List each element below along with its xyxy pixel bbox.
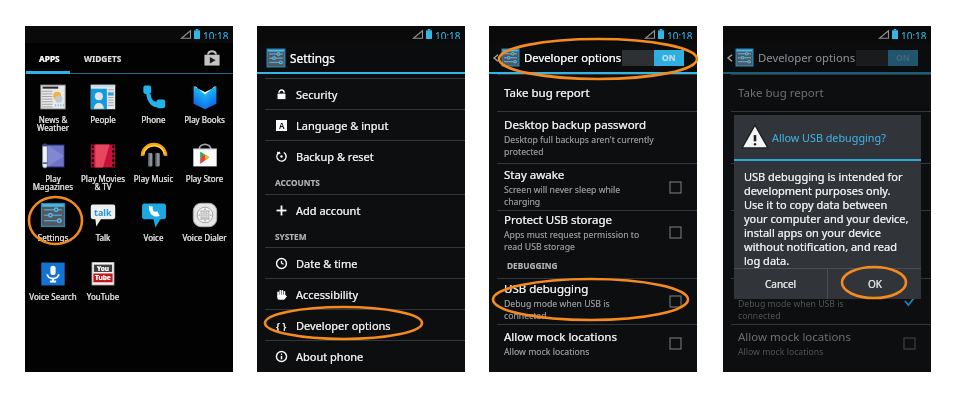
button[interactable]: People: [78, 78, 128, 137]
button[interactable]: Developer options toggle: [856, 50, 918, 66]
button[interactable]: Play Movies & TV: [78, 137, 128, 196]
staticText: OK: [868, 277, 882, 291]
staticText: Take bug report: [504, 85, 590, 101]
button[interactable]: Stay awake: [489, 164, 697, 210]
button[interactable]: Play Music: [128, 137, 179, 196]
button[interactable]: Cancel: [734, 269, 827, 299]
button[interactable]: Desktop backup password: [489, 112, 697, 163]
staticText: Desktop full backups aren't currently pr…: [504, 134, 654, 158]
staticText: Security: [296, 87, 338, 102]
button[interactable]: A: [257, 110, 465, 140]
staticText: Desktop backup password: [738, 117, 881, 133]
staticText: 10:18: [901, 29, 927, 39]
button[interactable]: Allow mock locations: [723, 325, 931, 361]
button[interactable]: Protect USB storage: [723, 211, 931, 253]
staticText: Protect USB storage: [504, 212, 613, 228]
button[interactable]: Desktop backup password: [723, 112, 931, 163]
button[interactable]: Developer options toggle: [622, 50, 684, 66]
staticText: Allow mock locations: [738, 346, 824, 358]
button[interactable]: Settings: [257, 43, 465, 72]
other: Back: [725, 53, 734, 62]
staticText: Settings: [290, 50, 335, 66]
staticText: SYSTEM: [275, 231, 307, 242]
button[interactable]: USB debugging checkbox: [904, 296, 915, 307]
staticText: Cancel: [765, 277, 797, 291]
button[interactable]: USB debugging: [723, 279, 931, 324]
button[interactable]: Protect USB storage: [489, 211, 697, 253]
button[interactable]: Accessibility: [257, 279, 465, 309]
staticText: Desktop backup password: [504, 117, 647, 133]
staticText: ON: [662, 52, 676, 64]
button[interactable]: News & Weather: [28, 78, 78, 137]
staticText: Play Store: [179, 173, 230, 184]
staticText: Accessibility: [296, 287, 359, 302]
button[interactable]: WIDGETS: [73, 43, 133, 73]
staticText: USB debugging is intended for developmen…: [744, 169, 911, 268]
staticText: Screen will never sleep while charging: [738, 184, 855, 208]
staticText: 10:18: [667, 29, 693, 39]
staticText: { }: [276, 320, 287, 331]
button[interactable]: Back: [489, 43, 697, 72]
staticText: Stay awake: [738, 167, 799, 183]
button[interactable]: Date & time: [257, 248, 465, 278]
button[interactable]: Stay awake: [723, 164, 931, 210]
staticText: 10:18: [203, 29, 229, 39]
button[interactable]: Stay awake checkbox: [670, 182, 681, 193]
staticText: Settings: [28, 232, 78, 243]
staticText: Developer options: [524, 50, 622, 65]
staticText: A: [279, 120, 285, 131]
button[interactable]: Play Magazines: [28, 137, 78, 196]
button[interactable]: Take bug report: [489, 75, 697, 111]
staticText: Allow USB debugging?: [772, 130, 886, 145]
button[interactable]: Voice Search: [28, 255, 78, 314]
button[interactable]: Allow mock locations checkbox: [670, 338, 681, 349]
button[interactable]: Play Books: [179, 78, 230, 137]
staticText: You: [97, 264, 110, 273]
button[interactable]: Add account: [257, 195, 465, 225]
staticText: Backup & reset: [296, 149, 374, 164]
button[interactable]: talk: [78, 196, 128, 255]
staticText: Language & input: [296, 118, 389, 133]
button[interactable]: Back: [723, 43, 931, 72]
button[interactable]: Voice: [128, 196, 179, 255]
button[interactable]: Voice Dialer: [179, 196, 230, 255]
button[interactable]: Play Store: [197, 43, 227, 73]
button[interactable]: Allow mock locations checkbox: [904, 338, 915, 349]
button[interactable]: About phone: [257, 341, 465, 371]
staticText: Voice Dialer: [179, 232, 230, 243]
button[interactable]: Take bug report: [723, 75, 931, 111]
staticText: Debug mode when USB is connected: [504, 298, 610, 322]
staticText: Play Magazines: [28, 173, 78, 192]
staticText: Developer options: [758, 50, 856, 65]
staticText: Protect USB storage: [738, 212, 847, 228]
button[interactable]: Allow mock locations: [489, 325, 697, 361]
staticText: Voice Search: [28, 291, 78, 302]
staticText: DEBUGGING: [507, 260, 558, 271]
button[interactable]: Play Store: [179, 137, 230, 196]
staticText: Screen will never sleep while charging: [504, 184, 621, 208]
staticText: Add account: [296, 203, 361, 218]
button[interactable]: USB debugging checkbox: [670, 296, 681, 307]
staticText: talk: [94, 206, 112, 218]
staticText: Play Movies & TV: [78, 173, 128, 192]
staticText: Debug mode when USB is connected: [738, 298, 844, 322]
staticText: Allow mock locations: [738, 329, 851, 345]
button[interactable]: USB debugging: [489, 279, 697, 324]
button[interactable]: Protect USB storage checkbox: [670, 227, 681, 238]
button[interactable]: Settings: [28, 196, 78, 255]
staticText: About phone: [296, 349, 364, 364]
button[interactable]: Security: [257, 79, 465, 109]
button[interactable]: { }: [257, 310, 465, 340]
button[interactable]: APPS: [25, 43, 73, 73]
button[interactable]: OK: [828, 269, 921, 299]
button[interactable]: You: [78, 255, 128, 314]
staticText: USB debugging: [738, 281, 823, 297]
staticText: Developer options: [296, 318, 391, 333]
button[interactable]: Backup & reset: [257, 141, 465, 171]
staticText: Voice: [128, 232, 179, 243]
button[interactable]: Phone: [128, 78, 179, 137]
